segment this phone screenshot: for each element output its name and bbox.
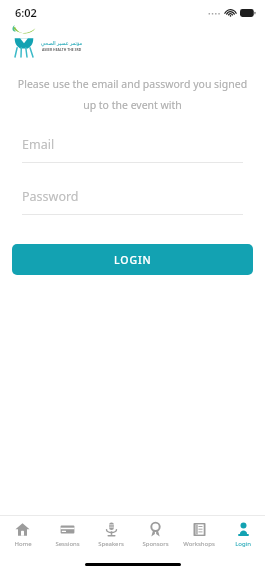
button[interactable]: Sponsors (133, 516, 177, 554)
button[interactable]: Home (0, 516, 45, 554)
button[interactable]: Speakers (89, 516, 133, 554)
staticText: Email (22, 136, 55, 153)
other: Aseer Health Conference logo (9, 25, 39, 58)
staticText: Sessions (55, 540, 80, 548)
staticText: Workshops (183, 540, 215, 548)
button[interactable]: Sessions (45, 516, 89, 554)
staticText: LOGIN (114, 253, 152, 267)
staticText: ASEER HEALTH THE 3RD (42, 47, 82, 52)
staticText: 6:02 (15, 5, 37, 20)
button[interactable]: Password (22, 188, 243, 215)
button[interactable]: Workshops (177, 516, 221, 554)
button[interactable]: Email (22, 136, 243, 163)
staticText: Password (22, 188, 79, 205)
button[interactable]: LOGIN (12, 244, 253, 275)
staticText: Login (235, 540, 251, 548)
staticText: Please use the email and password you si… (15, 77, 250, 113)
button[interactable]: Login (221, 516, 265, 554)
staticText: Sponsors (142, 540, 169, 548)
staticText: Speakers (98, 540, 124, 548)
staticText: Home (14, 540, 32, 548)
staticText: مؤتمر عسير الصحي (41, 40, 83, 47)
